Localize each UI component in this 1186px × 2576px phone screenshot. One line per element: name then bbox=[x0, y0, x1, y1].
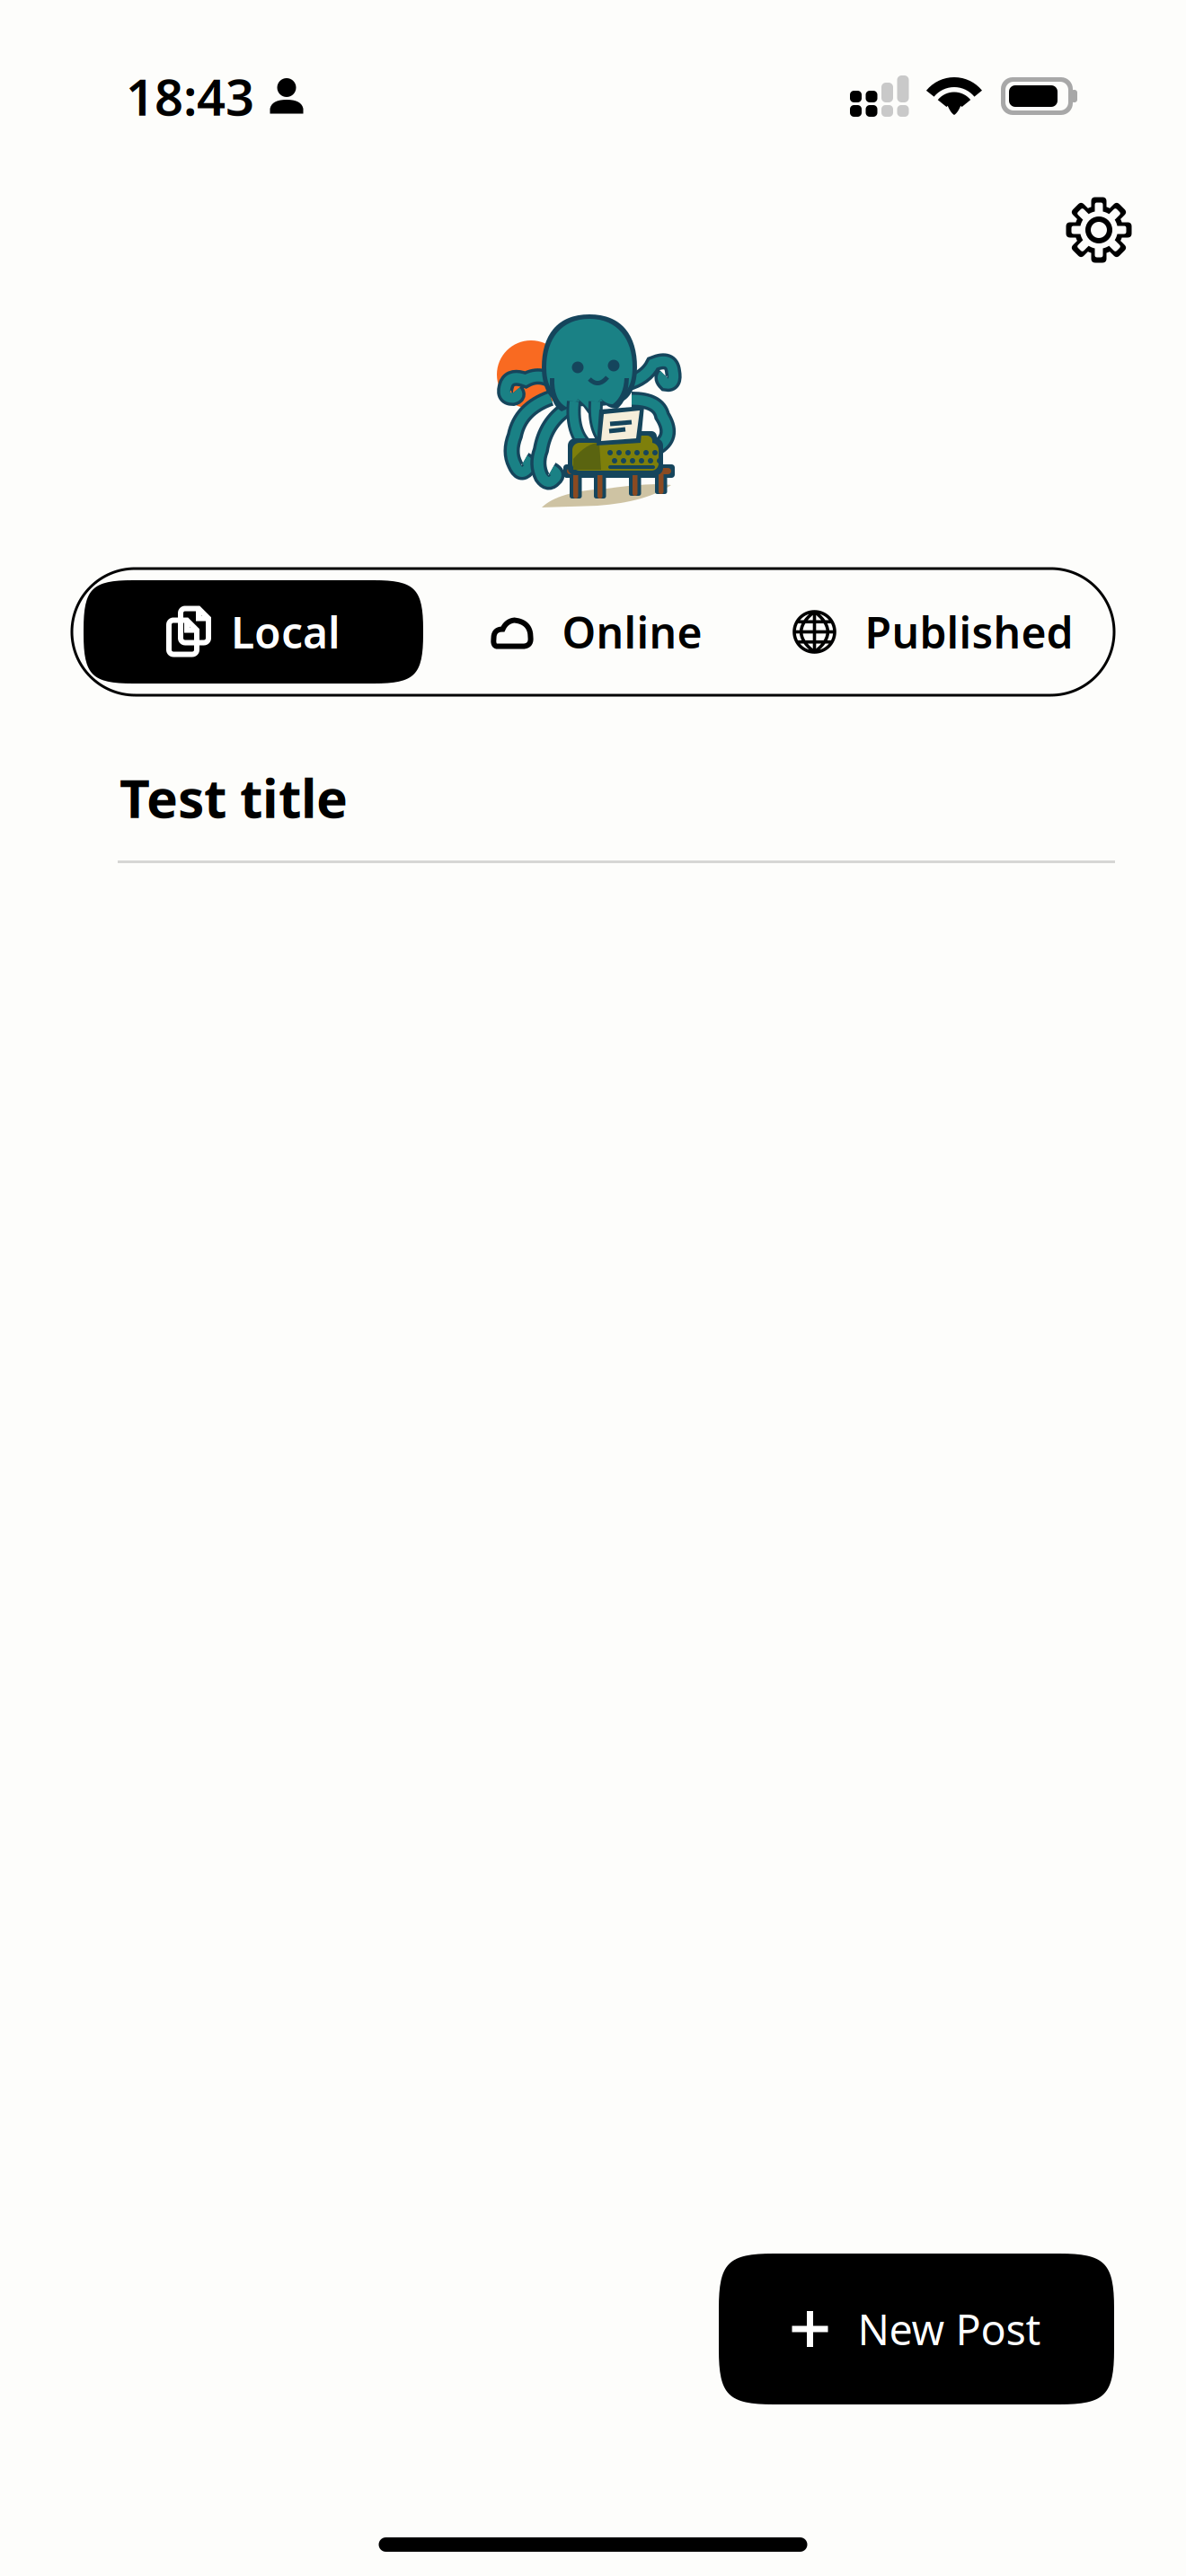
button[interactable]: Settings bbox=[1051, 182, 1146, 278]
button[interactable]: Online bbox=[423, 580, 763, 684]
button[interactable]: Local bbox=[84, 580, 423, 684]
button[interactable]: New Post bbox=[719, 2254, 1114, 2404]
staticText: Local bbox=[231, 603, 341, 660]
button[interactable]: Published bbox=[763, 580, 1102, 684]
button[interactable]: Test title bbox=[0, 735, 1186, 860]
staticText: New Post bbox=[858, 2301, 1041, 2357]
staticText: 18:43 bbox=[126, 63, 254, 130]
staticText: Published bbox=[865, 603, 1073, 660]
staticText: Online bbox=[562, 603, 702, 660]
staticText: Test title bbox=[119, 763, 348, 833]
